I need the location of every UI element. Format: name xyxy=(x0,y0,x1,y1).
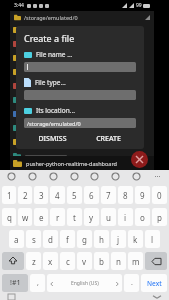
button[interactable]: 0 xyxy=(152,186,167,204)
button[interactable]: Keyboard tool 4 xyxy=(89,171,100,182)
button[interactable]: a xyxy=(9,230,24,248)
button[interactable] xyxy=(10,135,154,149)
button[interactable]: pusher-python-realtime-dashboard xyxy=(10,156,154,170)
button[interactable] xyxy=(10,65,154,79)
button[interactable]: 6 xyxy=(84,186,99,204)
button[interactable] xyxy=(10,107,154,121)
button[interactable]: e xyxy=(34,208,48,226)
staticText: !#1 xyxy=(10,278,21,288)
button[interactable]: b xyxy=(94,252,109,270)
button[interactable]: Backspace xyxy=(145,252,167,270)
staticText: a xyxy=(14,234,19,245)
button[interactable]: u xyxy=(101,208,116,226)
button[interactable]: 7 xyxy=(101,186,116,204)
button[interactable]: /storage/emulated/0 xyxy=(24,118,136,128)
staticText: t xyxy=(73,212,76,223)
button[interactable] xyxy=(10,51,154,65)
button[interactable]: 8 xyxy=(118,186,133,204)
button[interactable]: Keyboard tool 3 xyxy=(69,171,80,182)
button[interactable]: d xyxy=(43,230,58,248)
button[interactable]: m xyxy=(128,252,143,270)
button[interactable]: Keyboard layout xyxy=(6,294,16,300)
button[interactable] xyxy=(10,23,154,37)
button[interactable]: h xyxy=(94,230,109,248)
button[interactable]: 2 xyxy=(18,186,32,204)
button[interactable]: 4 xyxy=(50,186,65,204)
staticText: s xyxy=(32,234,36,245)
button[interactable]: !#1 xyxy=(2,274,28,292)
button[interactable]: Keyboard tool 2 xyxy=(48,171,59,182)
staticText: Its location... xyxy=(36,106,75,115)
button[interactable]: x xyxy=(43,252,58,270)
staticText: u xyxy=(106,212,111,223)
button[interactable] xyxy=(10,121,154,135)
button[interactable]: n xyxy=(111,252,126,270)
staticText: w xyxy=(22,212,29,223)
button[interactable] xyxy=(10,37,154,51)
button[interactable]: t xyxy=(67,208,82,226)
staticText: c xyxy=(66,256,70,267)
staticText: 7 xyxy=(106,190,111,201)
button[interactable]: Space xyxy=(47,274,122,292)
button[interactable]: Close xyxy=(131,151,148,168)
staticText: 1 xyxy=(7,190,12,201)
staticText: 4 xyxy=(55,190,60,201)
button[interactable]: g xyxy=(77,230,92,248)
staticText: 9 xyxy=(140,190,145,201)
staticText: l xyxy=(151,234,154,245)
staticText: 99 xyxy=(136,2,142,9)
button[interactable]: 1 xyxy=(2,186,16,204)
button[interactable]: k xyxy=(128,230,143,248)
staticText: 2 xyxy=(23,190,28,201)
staticText: p xyxy=(157,212,162,223)
button[interactable]: 9 xyxy=(135,186,150,204)
staticText: e xyxy=(39,212,44,223)
button[interactable]: Keyboard tool 6 xyxy=(131,171,142,182)
button[interactable]: p xyxy=(152,208,167,226)
button[interactable]: More options xyxy=(152,171,163,182)
button[interactable]: . xyxy=(124,274,139,292)
staticText: o xyxy=(140,212,145,223)
button[interactable]: f xyxy=(60,230,75,248)
button[interactable]: s xyxy=(26,230,41,248)
button[interactable]: v xyxy=(77,252,92,270)
button[interactable]: Keyboard tool 5 xyxy=(110,171,121,182)
button[interactable]: Shift xyxy=(2,252,24,270)
button[interactable]: l xyxy=(145,230,160,248)
staticText: Next xyxy=(147,279,162,288)
button[interactable]: z xyxy=(26,252,41,270)
button[interactable]: /storage/emulated/0 xyxy=(14,11,150,23)
staticText: 3 xyxy=(39,190,44,201)
button[interactable]: j xyxy=(111,230,126,248)
staticText: r xyxy=(56,212,60,223)
staticText: v xyxy=(82,256,87,267)
button[interactable] xyxy=(10,149,154,163)
button[interactable]: w xyxy=(18,208,32,226)
button[interactable]: 5 xyxy=(67,186,82,204)
button[interactable] xyxy=(24,62,136,72)
staticText: z xyxy=(32,256,36,267)
staticText: 5 xyxy=(72,190,77,201)
button[interactable]: Hide keyboard xyxy=(151,294,163,300)
staticText: . xyxy=(131,278,133,288)
button[interactable]: , xyxy=(30,274,45,292)
button[interactable]: r xyxy=(50,208,65,226)
button[interactable]: o xyxy=(135,208,150,226)
staticText: q xyxy=(7,212,12,223)
button[interactable]: CREATE xyxy=(80,132,136,146)
button[interactable]: q xyxy=(2,208,16,226)
staticText: DISMISS xyxy=(38,134,67,144)
button[interactable] xyxy=(10,93,154,107)
staticText: /storage/emulated/0 xyxy=(24,14,78,21)
button[interactable]: 3 xyxy=(34,186,48,204)
button[interactable]: DISMISS xyxy=(24,132,80,146)
button[interactable]: i xyxy=(118,208,133,226)
button[interactable] xyxy=(10,79,154,93)
button[interactable]: c xyxy=(60,252,75,270)
button[interactable]: Keyboard tool 0 xyxy=(6,171,17,182)
button[interactable]: Next xyxy=(141,274,167,292)
staticText: b xyxy=(99,256,104,267)
button[interactable]: y xyxy=(84,208,99,226)
button[interactable]: Keyboard tool 1 xyxy=(27,171,38,182)
